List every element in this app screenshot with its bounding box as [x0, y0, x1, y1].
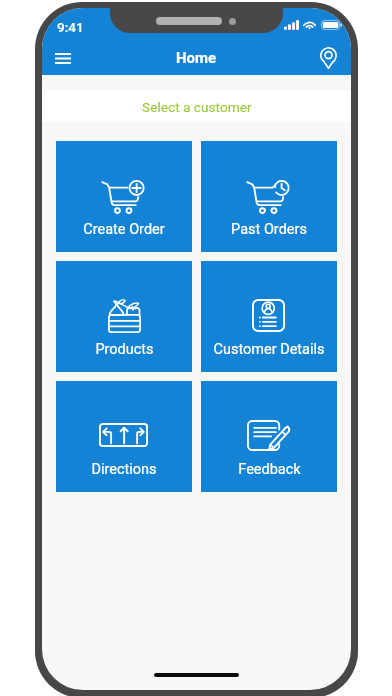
staticText: Products — [95, 341, 154, 358]
staticText: Create Order — [83, 221, 165, 238]
staticText: Customer Details — [213, 341, 325, 358]
button[interactable]: Directions — [56, 381, 192, 492]
staticText: Past Orders — [231, 221, 307, 238]
button[interactable]: Feedback — [201, 381, 337, 492]
staticText: 9:41 — [57, 19, 84, 35]
button[interactable]: Open navigation menu — [42, 43, 80, 75]
staticText: Select a customer — [142, 99, 252, 115]
button[interactable]: Select a customer — [42, 91, 351, 122]
button[interactable]: Past Orders — [201, 141, 337, 252]
staticText: Directions — [91, 461, 157, 478]
staticText: Feedback — [238, 461, 301, 478]
button[interactable]: Create Order — [56, 141, 192, 252]
button[interactable]: Products — [56, 261, 192, 372]
button[interactable]: Location — [313, 43, 351, 75]
staticText: Home — [176, 49, 217, 67]
button[interactable]: Customer Details — [201, 261, 337, 372]
